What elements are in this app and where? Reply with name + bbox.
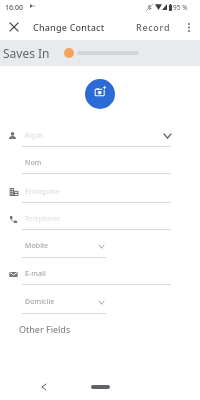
button[interactable]: Nom — [0, 152, 200, 174]
staticText: Domicile — [25, 297, 55, 307]
button[interactable]: More options — [180, 18, 198, 36]
staticText: Mobile — [25, 241, 49, 251]
button[interactable]: Domicile — [0, 291, 200, 314]
button[interactable]: Saves In — [0, 40, 200, 66]
button[interactable]: Rigdt — [0, 125, 200, 147]
staticText: Telephone — [25, 214, 61, 224]
staticText: 95 % — [173, 3, 188, 12]
button[interactable]: Home — [91, 385, 110, 389]
staticText: E-mail — [25, 269, 46, 279]
button[interactable]: Mobile — [0, 235, 200, 258]
button[interactable]: E-mail — [0, 263, 200, 285]
button[interactable]: Other Fields — [0, 316, 200, 342]
staticText: Other Fields — [19, 323, 71, 335]
staticText: Entreprise — [25, 187, 60, 197]
staticText: Change Contact — [33, 21, 105, 33]
button[interactable]: Entreprise — [0, 181, 200, 203]
staticText: Saves In — [3, 45, 50, 61]
staticText: Rigdt — [25, 131, 43, 141]
button[interactable]: Back — [36, 379, 52, 395]
button[interactable]: Select type — [95, 240, 107, 252]
button[interactable]: Telephone — [0, 208, 200, 230]
button[interactable]: Select type — [95, 296, 107, 308]
staticText: 16:00 — [5, 3, 23, 13]
button[interactable]: Close — [4, 17, 24, 37]
button[interactable]: Expand account — [160, 129, 174, 143]
staticText: Nom — [25, 158, 42, 168]
staticText: Record — [136, 21, 171, 33]
button[interactable]: Add photo — [85, 79, 115, 109]
button[interactable]: Record — [133, 17, 174, 37]
